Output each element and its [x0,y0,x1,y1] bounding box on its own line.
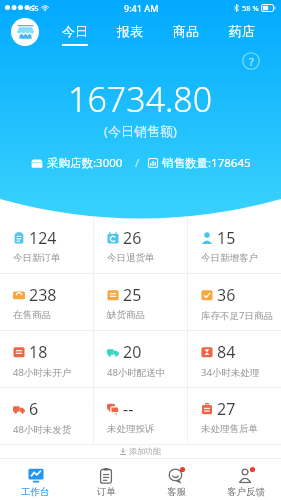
button[interactable]: 添加功能 [0,444,281,458]
staticText: 26 [123,227,142,249]
staticText: 未处理投诉 [107,423,155,435]
staticText: -- [123,398,134,420]
button[interactable]: Store [11,18,39,46]
staticText: 48小时未发货 [13,423,72,436]
staticText: 今日 [62,23,88,39]
staticText: 48小时未开户 [13,366,72,379]
button[interactable]: 84 [188,331,281,388]
staticText: 报表 [117,23,143,39]
staticText: 15 [217,227,236,249]
staticText: 27 [217,398,236,420]
staticText: 58 % [242,3,259,13]
staticText: 采购店数:3000 [47,155,123,171]
button[interactable]: 工作台 [0,459,71,500]
button[interactable]: Help [242,52,260,70]
staticText: 20 [123,341,142,363]
staticText: 9:41 AM [124,2,159,14]
staticText: 25 [123,284,142,306]
staticText: 药店 [229,23,255,39]
staticText: 客户反馈 [227,486,265,498]
staticText: 今日新增客户 [201,252,258,264]
staticText: ? [249,54,254,69]
staticText: (今日销售额) [104,122,177,140]
staticText: GS [29,3,39,13]
button[interactable]: 18 [0,331,93,388]
staticText: 36 [217,284,236,306]
button[interactable]: 238 [0,274,93,331]
staticText: 今日新订单 [13,252,61,264]
staticText: 84 [217,341,236,363]
staticText: 缺货商品 [107,309,145,321]
button[interactable]: 25 [94,274,187,331]
button[interactable]: 客户反馈 [211,459,281,500]
button[interactable]: 15 [188,217,281,274]
button[interactable]: 订单 [71,459,141,500]
staticText: 6 [29,398,39,420]
staticText: 在售商品 [13,309,51,321]
button[interactable]: 20 [94,331,187,388]
button[interactable]: 报表 [102,17,158,47]
staticText: 商品 [173,23,199,39]
staticText: 238 [29,284,57,306]
staticText: 销售数量:178645 [162,155,251,171]
staticText: 18 [29,341,48,363]
staticText: 订单 [97,486,116,498]
staticText: 库存不足7日商品 [201,309,273,322]
button[interactable]: 6 [0,388,93,445]
staticText: 未处理售后单 [201,423,258,435]
button[interactable]: -- [94,388,187,445]
staticText: 客服 [167,486,186,498]
staticText: 工作台 [21,486,50,498]
button[interactable]: 客服 [141,459,211,500]
staticText: 34小时未处理 [201,366,260,379]
button[interactable]: 药店 [214,17,270,47]
button[interactable]: 26 [94,217,187,274]
button[interactable]: 今日 [47,17,102,47]
button[interactable]: 商品 [158,17,214,47]
staticText: / [135,155,140,171]
staticText: 124 [29,227,57,249]
button[interactable]: 124 [0,217,93,274]
staticText: 16734.80 [68,76,213,122]
button[interactable]: 36 [188,274,281,331]
button[interactable]: 27 [188,388,281,445]
staticText: 48小时配送中 [107,366,166,379]
staticText: 添加功能 [129,446,161,456]
staticText: 今日退货单 [107,252,155,264]
